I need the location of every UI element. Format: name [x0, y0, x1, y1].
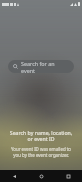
button[interactable]: Search for an event	[8, 60, 74, 73]
button[interactable]: Home	[28, 170, 55, 182]
staticText: Search for an event	[21, 60, 69, 73]
staticText: Your event ID was emailed to you by the …	[7, 146, 75, 158]
button[interactable]: Recent apps	[55, 170, 82, 182]
staticText: Search by name, location, or event ID	[7, 129, 75, 143]
button[interactable]: Back	[0, 170, 28, 182]
